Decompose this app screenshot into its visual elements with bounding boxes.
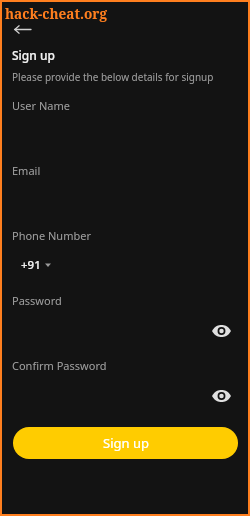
button[interactable]: Confirm Password bbox=[2, 352, 248, 410]
staticText: Sign up bbox=[103, 434, 149, 452]
staticText: Sign up bbox=[12, 47, 55, 63]
staticText: Phone Number bbox=[12, 228, 91, 243]
button[interactable]: Back bbox=[9, 16, 35, 42]
button[interactable]: +91 bbox=[21, 257, 51, 273]
staticText: Password bbox=[12, 293, 62, 308]
button[interactable]: User Name bbox=[2, 92, 248, 150]
button[interactable]: Email bbox=[2, 157, 248, 215]
staticText: Please provide the below details for sig… bbox=[12, 70, 214, 84]
staticText: hack-cheat.org bbox=[5, 4, 107, 23]
button[interactable]: Sign up bbox=[13, 427, 238, 459]
staticText: Confirm Password bbox=[12, 358, 107, 373]
staticText: Email bbox=[12, 163, 41, 178]
button[interactable]: Show confirm password bbox=[210, 385, 232, 407]
staticText: +91 bbox=[21, 257, 41, 273]
button[interactable]: Show password bbox=[210, 320, 232, 342]
button[interactable]: Password bbox=[2, 287, 248, 345]
button[interactable]: Phone Number bbox=[2, 222, 248, 280]
staticText: User Name bbox=[12, 98, 70, 113]
